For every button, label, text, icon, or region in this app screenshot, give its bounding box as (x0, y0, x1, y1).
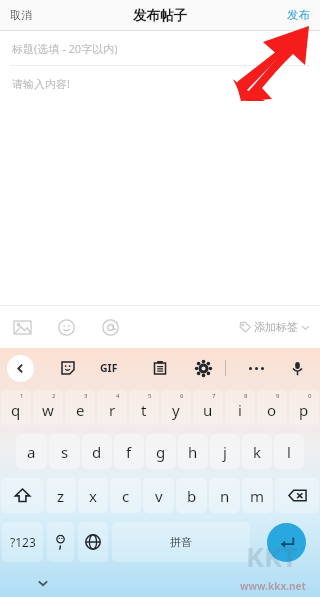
staticText: p (299, 400, 309, 420)
staticText: s (61, 442, 69, 462)
staticText: m (250, 486, 265, 506)
staticText: q (11, 400, 21, 420)
button[interactable]: Voice input (284, 355, 310, 381)
staticText: f (126, 442, 132, 462)
staticText: c (122, 486, 130, 506)
staticText: n (220, 486, 230, 506)
staticText: 4 (116, 392, 120, 400)
button[interactable]: v (143, 478, 174, 513)
button[interactable]: s (49, 434, 80, 469)
button[interactable]: Comma and emoji (47, 522, 74, 562)
button[interactable]: Add image (0, 306, 44, 348)
staticText: e (76, 400, 85, 420)
button[interactable]: 8 (225, 390, 255, 425)
button[interactable]: g (146, 434, 176, 469)
staticText: 请输入内容! (12, 76, 70, 91)
staticText: g (156, 442, 166, 462)
staticText: j (223, 442, 227, 462)
staticText: 9 (276, 392, 280, 400)
staticText: v (155, 486, 163, 506)
button[interactable]: 6 (161, 390, 191, 425)
button[interactable]: 0 (289, 390, 319, 425)
staticText: h (188, 442, 198, 462)
staticText: z (57, 486, 65, 506)
button[interactable]: Hide keyboard (36, 576, 50, 590)
staticText: u (203, 400, 213, 420)
button[interactable]: 1 (1, 390, 31, 425)
staticText: i (238, 400, 242, 420)
staticText: 0 (308, 392, 312, 400)
button[interactable]: j (210, 434, 240, 469)
button[interactable]: 7 (193, 390, 223, 425)
staticText: d (92, 442, 102, 462)
button[interactable]: Back (7, 355, 34, 382)
staticText: 取消 (10, 8, 32, 22)
staticText: 3 (84, 392, 88, 400)
staticText: x (89, 486, 97, 506)
button[interactable]: 标题(选填 - 20字以内) (0, 31, 320, 65)
button[interactable]: l (274, 434, 304, 469)
button[interactable]: 3 (65, 390, 95, 425)
button[interactable]: 发布 (277, 0, 320, 30)
staticText: 拼音 (170, 535, 192, 549)
staticText: 5 (148, 392, 152, 400)
staticText: 添加标签 (254, 320, 298, 334)
staticText: www.kkx.net (240, 579, 306, 593)
button[interactable]: Change language (78, 522, 108, 562)
button[interactable]: Enter (267, 523, 306, 562)
button[interactable]: 9 (257, 390, 287, 425)
button[interactable]: b (176, 478, 207, 513)
button[interactable]: d (82, 434, 112, 469)
staticText: 8 (244, 392, 248, 400)
button[interactable]: Mention (88, 306, 132, 348)
staticText: a (27, 442, 36, 462)
button[interactable]: 拼音 (112, 522, 250, 562)
button[interactable]: c (110, 478, 141, 513)
staticText: r (109, 400, 116, 420)
button[interactable]: z (46, 478, 76, 513)
button[interactable]: f (114, 434, 144, 469)
button[interactable]: Shift (1, 478, 44, 513)
button[interactable]: 5 (129, 390, 159, 425)
button[interactable]: a (16, 434, 47, 469)
button[interactable]: 4 (97, 390, 127, 425)
button[interactable]: m (242, 478, 273, 513)
button[interactable]: GIF (100, 355, 118, 381)
staticText: 1 (20, 392, 24, 400)
button[interactable]: Backspace (275, 478, 319, 513)
button[interactable]: Stickers (55, 355, 81, 381)
staticText: 发布帖子 (133, 7, 187, 24)
button[interactable]: n (209, 478, 240, 513)
button[interactable]: ?123 (2, 522, 43, 562)
button[interactable]: Emoji (44, 306, 88, 348)
staticText: 6 (180, 392, 184, 400)
staticText: KKT (246, 538, 298, 575)
staticText: t (141, 400, 147, 420)
button[interactable]: k (242, 434, 272, 469)
button[interactable]: 取消 (0, 0, 42, 30)
staticText: k (253, 442, 262, 462)
staticText: w (42, 400, 54, 420)
button[interactable]: Settings (190, 355, 216, 381)
staticText: 7 (212, 392, 216, 400)
staticText: 2 (52, 392, 56, 400)
staticText: 发布 (287, 8, 310, 22)
button[interactable]: 请输入内容! (0, 66, 320, 305)
button[interactable]: x (78, 478, 108, 513)
staticText: y (172, 400, 180, 420)
button[interactable]: More (243, 355, 269, 381)
button[interactable]: 添加标签 (239, 306, 320, 348)
staticText: o (267, 400, 277, 420)
button[interactable]: h (178, 434, 208, 469)
button[interactable]: Clipboard (147, 355, 173, 381)
staticText: b (187, 486, 197, 506)
staticText: GIF (100, 361, 118, 375)
staticText: ?123 (10, 534, 36, 550)
staticText: l (287, 442, 291, 462)
staticText: 标题(选填 - 20字以内) (12, 41, 118, 56)
button[interactable]: 2 (33, 390, 63, 425)
